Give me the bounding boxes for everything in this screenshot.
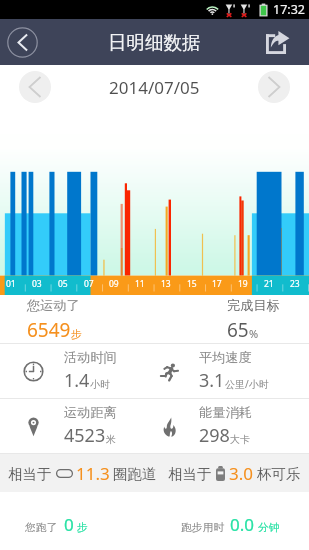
staticText: 相当于 — [168, 465, 212, 483]
staticText: 完成目标 — [227, 297, 280, 314]
staticText: 2014/07/05 — [109, 76, 200, 99]
staticText: 小时 — [90, 378, 110, 391]
staticText: 您跑了 — [25, 521, 58, 535]
staticText: 4523 — [64, 423, 106, 448]
staticText: 1.4 — [64, 368, 90, 393]
staticText: 17:32 — [273, 1, 305, 18]
staticText: 19 — [238, 278, 248, 290]
staticText: 大卡 — [230, 433, 250, 446]
staticText: 13 — [161, 278, 171, 290]
button[interactable]: Previous day — [19, 71, 51, 103]
button[interactable]: 活动时间 — [23, 344, 165, 398]
staticText: 运动距离 — [64, 404, 117, 421]
staticText: 03 — [32, 278, 42, 290]
staticText: 65 — [227, 317, 249, 343]
staticText: 相当于 — [8, 465, 52, 483]
button[interactable]: 能量消耗 — [159, 399, 299, 453]
staticText: 您运动了 — [27, 297, 80, 314]
staticText: 步 — [71, 327, 82, 341]
staticText: % — [249, 326, 259, 341]
staticText: 11 — [135, 278, 145, 290]
staticText: 步 — [77, 521, 88, 535]
staticText: 日明细数据 — [108, 31, 201, 54]
staticText: 11.3 — [76, 462, 110, 485]
staticText: 活动时间 — [64, 349, 117, 366]
staticText: 05 — [58, 278, 68, 290]
staticText: 跑步用时 — [181, 521, 225, 535]
staticText: 0 — [64, 513, 74, 536]
staticText: 0.0 — [230, 513, 255, 536]
staticText: 分钟 — [258, 521, 280, 535]
staticText: 圈跑道 — [113, 465, 157, 483]
staticText: 3.1 — [199, 368, 225, 393]
staticText: 01 — [6, 278, 16, 290]
staticText: 3.0 — [229, 462, 254, 485]
staticText: 09 — [109, 278, 119, 290]
staticText: 米 — [106, 433, 116, 446]
staticText: 15 — [187, 278, 197, 290]
staticText: 平均速度 — [199, 349, 252, 366]
staticText: 杯可乐 — [257, 465, 301, 483]
staticText: 能量消耗 — [199, 404, 252, 421]
button[interactable]: Share — [262, 27, 293, 58]
button[interactable]: Back — [5, 25, 39, 59]
staticText: 17 — [212, 278, 222, 290]
staticText: 6549 — [27, 317, 71, 343]
button[interactable]: 运动距离 — [23, 399, 165, 453]
staticText: 07 — [84, 278, 94, 290]
staticText: 298 — [199, 423, 230, 448]
button[interactable]: Next day — [258, 71, 290, 103]
staticText: 公里/小时 — [225, 377, 269, 391]
staticText: 23 — [290, 278, 300, 290]
button[interactable]: 平均速度 — [159, 344, 299, 398]
staticText: 21 — [264, 278, 274, 290]
